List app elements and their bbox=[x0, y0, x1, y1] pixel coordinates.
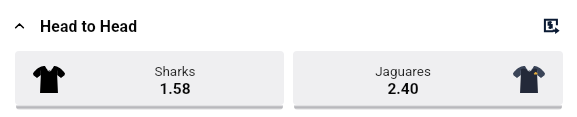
button[interactable]: Head to Head bbox=[0, 14, 577, 38]
staticText: 1.58 bbox=[159, 80, 191, 98]
staticText: 2.40 bbox=[387, 80, 419, 98]
button[interactable]: Sharks bbox=[15, 51, 284, 105]
staticText: Sharks bbox=[154, 63, 196, 79]
button[interactable]: Cash out bbox=[542, 17, 561, 36]
staticText: Head to Head bbox=[40, 17, 138, 36]
button[interactable]: Jaguares bbox=[293, 51, 563, 105]
staticText: Jaguares bbox=[375, 63, 431, 79]
